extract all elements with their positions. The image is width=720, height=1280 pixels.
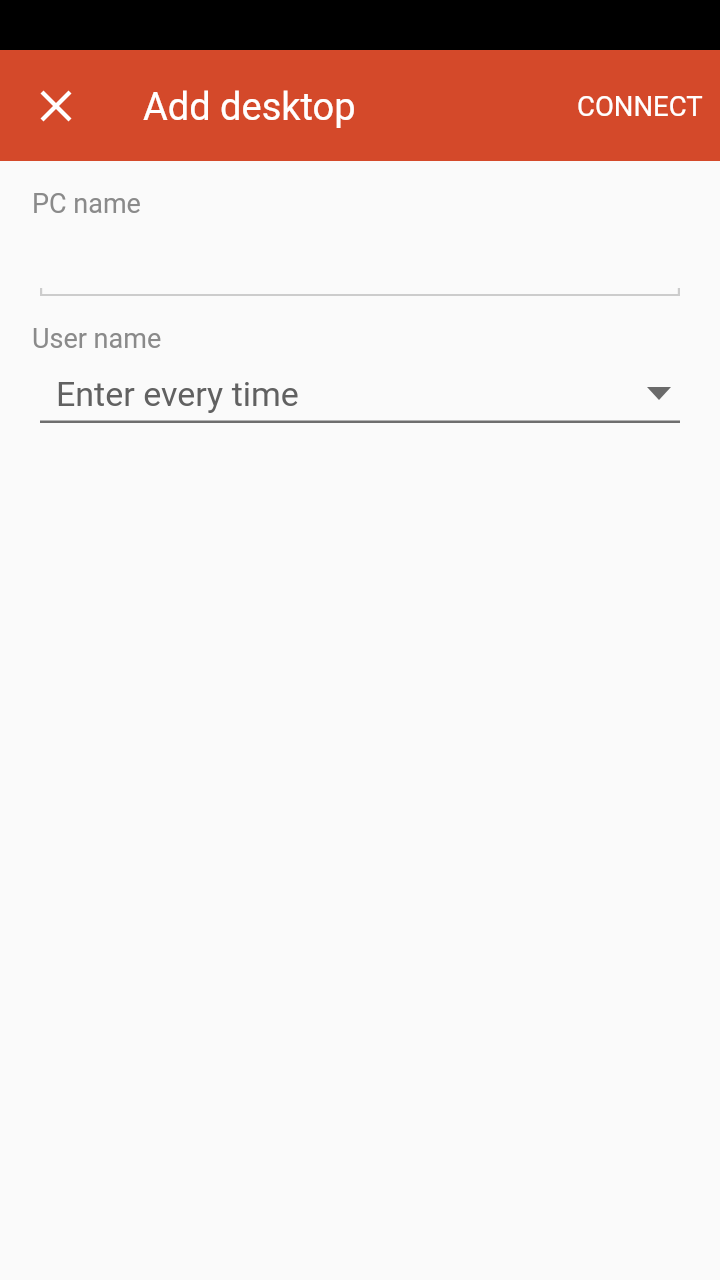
button[interactable]: CONNECT (560, 50, 720, 161)
button[interactable]: Close (20, 70, 92, 142)
staticText: CONNECT (577, 90, 703, 122)
staticText: User name (32, 323, 162, 355)
staticText: Add desktop (143, 85, 356, 130)
staticText: PC name (32, 188, 141, 220)
button[interactable]: PC name (40, 223, 680, 297)
button[interactable]: Enter every time (40, 366, 680, 423)
staticText: Enter every time (56, 374, 299, 414)
